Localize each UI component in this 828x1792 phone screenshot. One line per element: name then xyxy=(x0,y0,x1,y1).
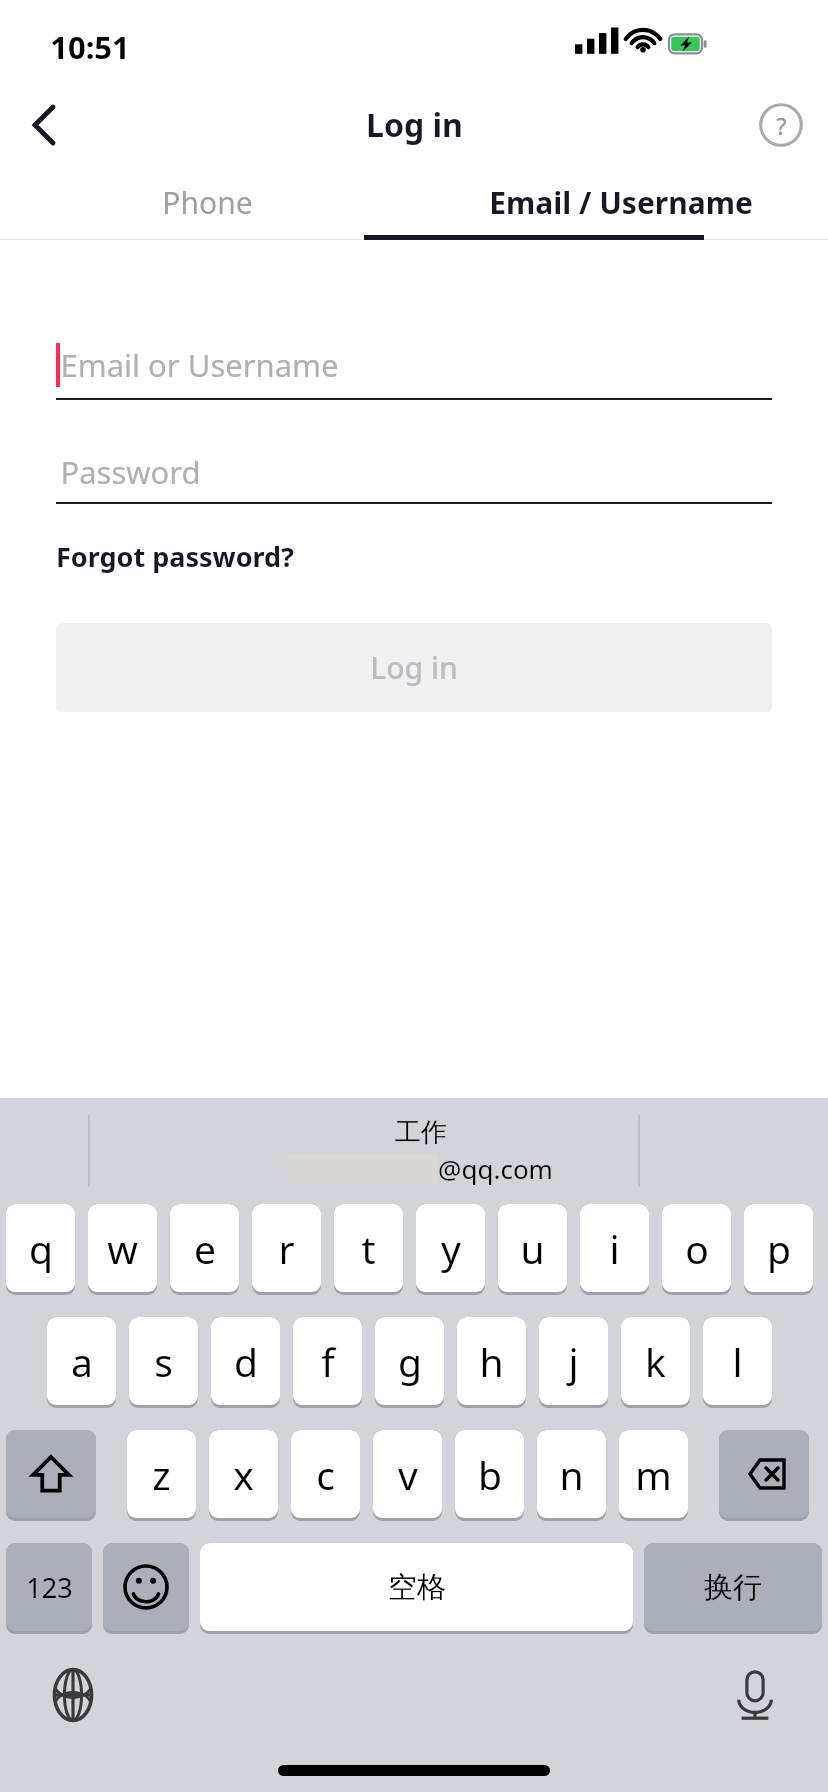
button[interactable]: Help xyxy=(754,98,808,152)
staticText: r xyxy=(278,1222,295,1275)
button[interactable]: d xyxy=(211,1317,280,1408)
staticText: j xyxy=(568,1335,579,1388)
staticText: 123 xyxy=(26,1569,73,1606)
button[interactable]: b xyxy=(455,1430,524,1521)
button[interactable]: o xyxy=(662,1204,731,1295)
staticText: Log in xyxy=(366,103,463,147)
staticText: Password xyxy=(60,451,201,493)
staticText: 空格 xyxy=(388,1569,446,1606)
button[interactable]: g xyxy=(375,1317,444,1408)
staticText: c xyxy=(316,1448,335,1501)
staticText: i xyxy=(609,1222,620,1275)
staticText: Email or Username xyxy=(60,344,339,386)
button[interactable]: Switch language xyxy=(44,1666,102,1724)
button[interactable]: Password xyxy=(56,442,772,502)
staticText: o xyxy=(685,1222,709,1275)
staticText: q xyxy=(29,1222,53,1275)
button[interactable]: t xyxy=(334,1204,403,1295)
button[interactable]: i xyxy=(580,1204,649,1295)
staticText: k xyxy=(645,1335,666,1388)
button[interactable]: h xyxy=(457,1317,526,1408)
button[interactable]: n xyxy=(537,1430,606,1521)
staticText: Log in xyxy=(370,647,458,688)
button[interactable]: s xyxy=(129,1317,198,1408)
staticText: Email / Username xyxy=(489,182,753,223)
staticText: Phone xyxy=(162,182,253,223)
button[interactable]: r xyxy=(252,1204,321,1295)
button[interactable]: Email / Username xyxy=(414,164,828,240)
staticText: h xyxy=(479,1335,504,1388)
staticText: x xyxy=(233,1448,254,1501)
staticText: @qq.com xyxy=(438,1151,553,1186)
button[interactable]: 123 xyxy=(6,1543,92,1634)
staticText: ? xyxy=(776,110,787,141)
button[interactable]: Backspace xyxy=(719,1430,809,1521)
button[interactable]: z xyxy=(127,1430,196,1521)
button[interactable]: Emoji xyxy=(103,1543,189,1634)
button[interactable]: f xyxy=(293,1317,362,1408)
staticText: n xyxy=(559,1448,584,1501)
button[interactable]: k xyxy=(621,1317,690,1408)
staticText: u xyxy=(520,1222,545,1275)
staticText: w xyxy=(107,1222,138,1275)
button[interactable]: y xyxy=(416,1204,485,1295)
button[interactable]: v xyxy=(373,1430,442,1521)
button[interactable]: l xyxy=(703,1317,772,1408)
button[interactable]: Shift xyxy=(6,1430,96,1521)
staticText: y xyxy=(441,1222,461,1275)
button[interactable]: q xyxy=(6,1204,75,1295)
staticText: l xyxy=(732,1335,743,1388)
staticText: b xyxy=(478,1448,502,1501)
button[interactable]: Phone xyxy=(0,164,414,240)
staticText: e xyxy=(194,1222,216,1275)
staticText: s xyxy=(154,1335,173,1388)
button[interactable]: e xyxy=(170,1204,239,1295)
button[interactable]: Voice input xyxy=(726,1666,784,1724)
staticText: 换行 xyxy=(704,1569,762,1606)
button[interactable]: 空格 xyxy=(200,1543,633,1634)
staticText: t xyxy=(361,1222,376,1275)
button[interactable]: Email or Username xyxy=(56,332,772,398)
button[interactable]: Log in xyxy=(56,623,772,712)
staticText: 10:51 xyxy=(50,26,130,68)
staticText: Forgot password? xyxy=(56,538,294,575)
staticText: m xyxy=(635,1448,672,1501)
staticText: v xyxy=(398,1448,418,1501)
staticText: a xyxy=(71,1335,93,1388)
button[interactable]: w xyxy=(88,1204,157,1295)
button[interactable]: m xyxy=(619,1430,688,1521)
staticText: f xyxy=(321,1335,335,1388)
button[interactable]: Back xyxy=(12,94,74,156)
button[interactable]: c xyxy=(291,1430,360,1521)
button[interactable]: x xyxy=(209,1430,278,1521)
staticText: d xyxy=(234,1335,258,1388)
button[interactable]: Forgot password? xyxy=(56,530,294,583)
staticText: p xyxy=(767,1222,791,1275)
button[interactable]: a xyxy=(47,1317,116,1408)
staticText: z xyxy=(152,1448,171,1501)
button[interactable]: 换行 xyxy=(644,1543,822,1634)
button[interactable]: p xyxy=(744,1204,813,1295)
staticText: 工作 xyxy=(395,1116,447,1149)
button[interactable]: j xyxy=(539,1317,608,1408)
button[interactable]: u xyxy=(498,1204,567,1295)
staticText: g xyxy=(398,1335,422,1388)
